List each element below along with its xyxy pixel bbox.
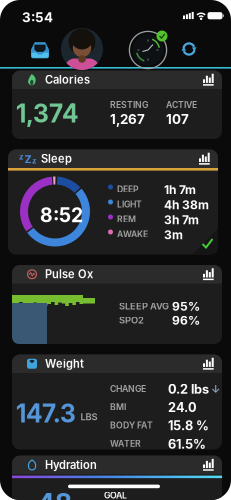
staticText: Hydration — [45, 458, 97, 472]
staticText: Sleep — [41, 152, 72, 165]
button[interactable]: Sync — [0, 28, 197, 57]
staticText: GOAL — [104, 490, 127, 500]
staticText: 8:52 — [40, 203, 83, 227]
staticText: LBS — [80, 411, 97, 423]
staticText: ACTIVE — [166, 99, 197, 110]
button[interactable]: Details — [203, 74, 214, 86]
staticText: AWAKE — [117, 229, 148, 239]
staticText: 61.5% — [168, 436, 206, 452]
staticText: Calories — [45, 73, 90, 86]
staticText: 1h 7m — [164, 182, 196, 197]
staticText: SPO2 — [119, 314, 144, 326]
staticText: 48 — [37, 487, 72, 500]
button[interactable]: z — [12, 149, 222, 254]
staticText: CHANGE — [110, 383, 146, 394]
button[interactable]: Details — [199, 153, 210, 165]
button[interactable]: Details — [203, 358, 214, 370]
staticText: Pulse Ox — [45, 268, 93, 281]
staticText: z — [32, 156, 37, 165]
button[interactable]: Calories — [12, 70, 222, 139]
staticText: RESTING — [110, 99, 148, 110]
staticText: 3m — [164, 227, 183, 242]
staticText: WATER — [110, 438, 141, 449]
button[interactable]: Pulse Ox — [12, 265, 222, 344]
staticText: 147.3 — [16, 398, 76, 428]
staticText: LIGHT — [117, 199, 142, 209]
staticText: Weight — [45, 357, 84, 370]
staticText: 4h 38m — [164, 197, 209, 212]
staticText: 1,267 — [110, 111, 145, 127]
staticText: 95% — [172, 299, 200, 313]
button[interactable]: Hydration — [12, 460, 222, 500]
staticText: DEEP — [117, 184, 139, 194]
staticText: 3:54 — [22, 9, 53, 25]
staticText: ↓ — [211, 383, 220, 396]
button[interactable]: Inbox — [0, 28, 49, 58]
staticText: SLEEP AVG — [119, 300, 169, 312]
staticText: BMI — [110, 402, 126, 412]
button[interactable]: Profile — [0, 28, 103, 70]
staticText: 96% — [172, 313, 200, 327]
staticText: 107 — [166, 111, 189, 127]
staticText: 24.0 — [168, 400, 197, 415]
button[interactable]: Weight — [12, 354, 222, 449]
staticText: 15.8 % — [168, 418, 209, 433]
staticText: Z — [24, 153, 31, 166]
button[interactable]: Device — [0, 28, 168, 70]
staticText: REM — [117, 214, 136, 224]
button[interactable]: Details — [203, 459, 214, 471]
button[interactable]: Details — [203, 268, 214, 280]
staticText: 1,374 — [16, 98, 79, 128]
staticText: z — [19, 152, 24, 161]
staticText: 3h 7m — [164, 212, 199, 227]
staticText: BODY FAT — [110, 420, 153, 431]
staticText: 0.2 lbs — [168, 381, 209, 397]
